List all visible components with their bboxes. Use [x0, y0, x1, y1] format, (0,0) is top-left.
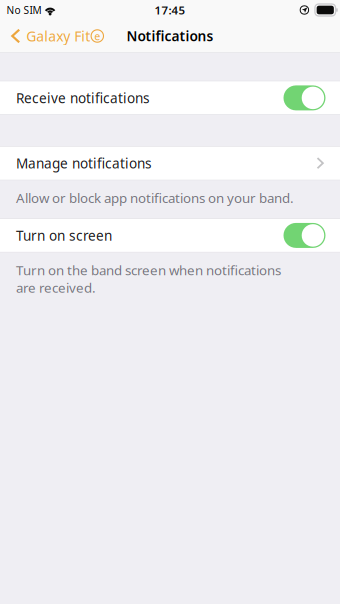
button[interactable]: Back to Galaxy Fit — [0, 22, 111, 50]
button[interactable]: Turn on screen — [0, 219, 340, 252]
staticText: No SIM — [6, 3, 41, 17]
button[interactable]: Receive notifications — [0, 81, 340, 114]
staticText: Allow or block app notifications on your… — [16, 189, 294, 207]
staticText: Turn on screen — [16, 226, 112, 244]
staticText: Galaxy Fit — [26, 27, 90, 45]
staticText: Notifications — [126, 27, 213, 45]
button[interactable]: Manage notifications — [0, 147, 340, 180]
staticText: e — [94, 29, 100, 43]
staticText: Receive notifications — [16, 89, 150, 107]
staticText: 17:45 — [154, 2, 185, 18]
staticText: Manage notifications — [16, 154, 152, 172]
staticText: Turn on the band screen when notificatio… — [16, 261, 281, 296]
